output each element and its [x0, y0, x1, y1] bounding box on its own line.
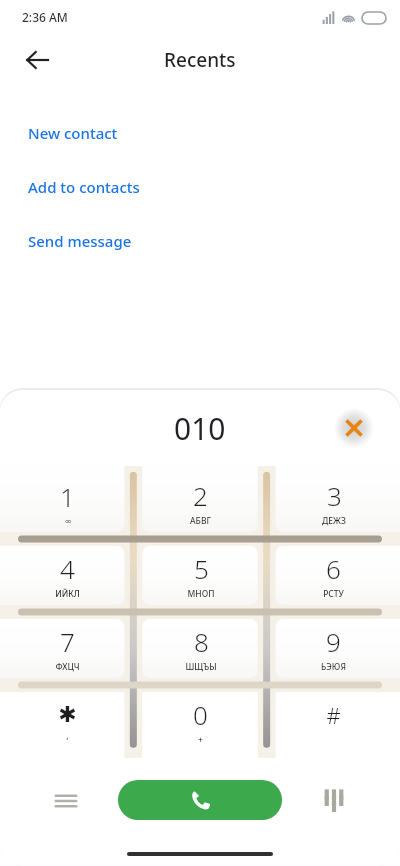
button[interactable]: 2: [134, 466, 267, 539]
button[interactable]: Call log: [46, 781, 86, 821]
staticText: 010: [174, 408, 226, 449]
staticText: АБВГ: [190, 515, 211, 527]
button[interactable]: New contact: [0, 106, 400, 160]
button[interactable]: 5: [134, 539, 267, 612]
staticText: 4: [60, 551, 75, 586]
button[interactable]: 1: [0, 466, 134, 539]
staticText: ЬЭЮЯ: [321, 661, 346, 673]
staticText: ∞: [64, 516, 72, 526]
staticText: ФХЦЧ: [55, 661, 80, 673]
button[interactable]: Back: [14, 37, 60, 83]
staticText: 7: [60, 624, 75, 659]
staticText: ИЙКЛ: [55, 588, 80, 600]
staticText: ,: [66, 730, 69, 742]
staticText: ШЩЪЫ: [185, 661, 217, 673]
staticText: 5: [194, 551, 209, 586]
button[interactable]: 9: [267, 612, 400, 685]
button[interactable]: 4: [0, 539, 134, 612]
button[interactable]: 8: [134, 612, 267, 685]
staticText: 1: [60, 479, 75, 514]
button[interactable]: Dialpad: [314, 781, 354, 821]
staticText: ДЕЖЗ: [322, 515, 346, 527]
staticText: МНОП: [187, 588, 215, 600]
staticText: ✱: [58, 702, 77, 728]
staticText: Recents: [164, 47, 236, 73]
staticText: 9: [326, 624, 341, 659]
button[interactable]: 6: [267, 539, 400, 612]
button[interactable]: Add to contacts: [0, 160, 400, 214]
staticText: 2:36 AM: [22, 9, 68, 25]
button[interactable]: ✱: [0, 685, 134, 758]
button[interactable]: Send message: [0, 214, 400, 268]
staticText: +: [198, 734, 203, 746]
staticText: New contact: [28, 123, 118, 143]
button[interactable]: 7: [0, 612, 134, 685]
button[interactable]: 0: [134, 685, 267, 758]
button[interactable]: #: [267, 685, 400, 758]
staticText: #: [326, 700, 341, 730]
staticText: 0: [193, 697, 208, 732]
staticText: 6: [326, 551, 341, 586]
staticText: 2: [193, 478, 208, 513]
button[interactable]: Clear: [334, 408, 374, 448]
staticText: Add to contacts: [28, 177, 140, 197]
button[interactable]: 3: [267, 466, 400, 539]
staticText: РСТУ: [323, 588, 344, 600]
button[interactable]: Call: [118, 780, 282, 820]
staticText: Send message: [28, 231, 132, 251]
staticText: 3: [327, 478, 342, 513]
staticText: 8: [194, 624, 209, 659]
